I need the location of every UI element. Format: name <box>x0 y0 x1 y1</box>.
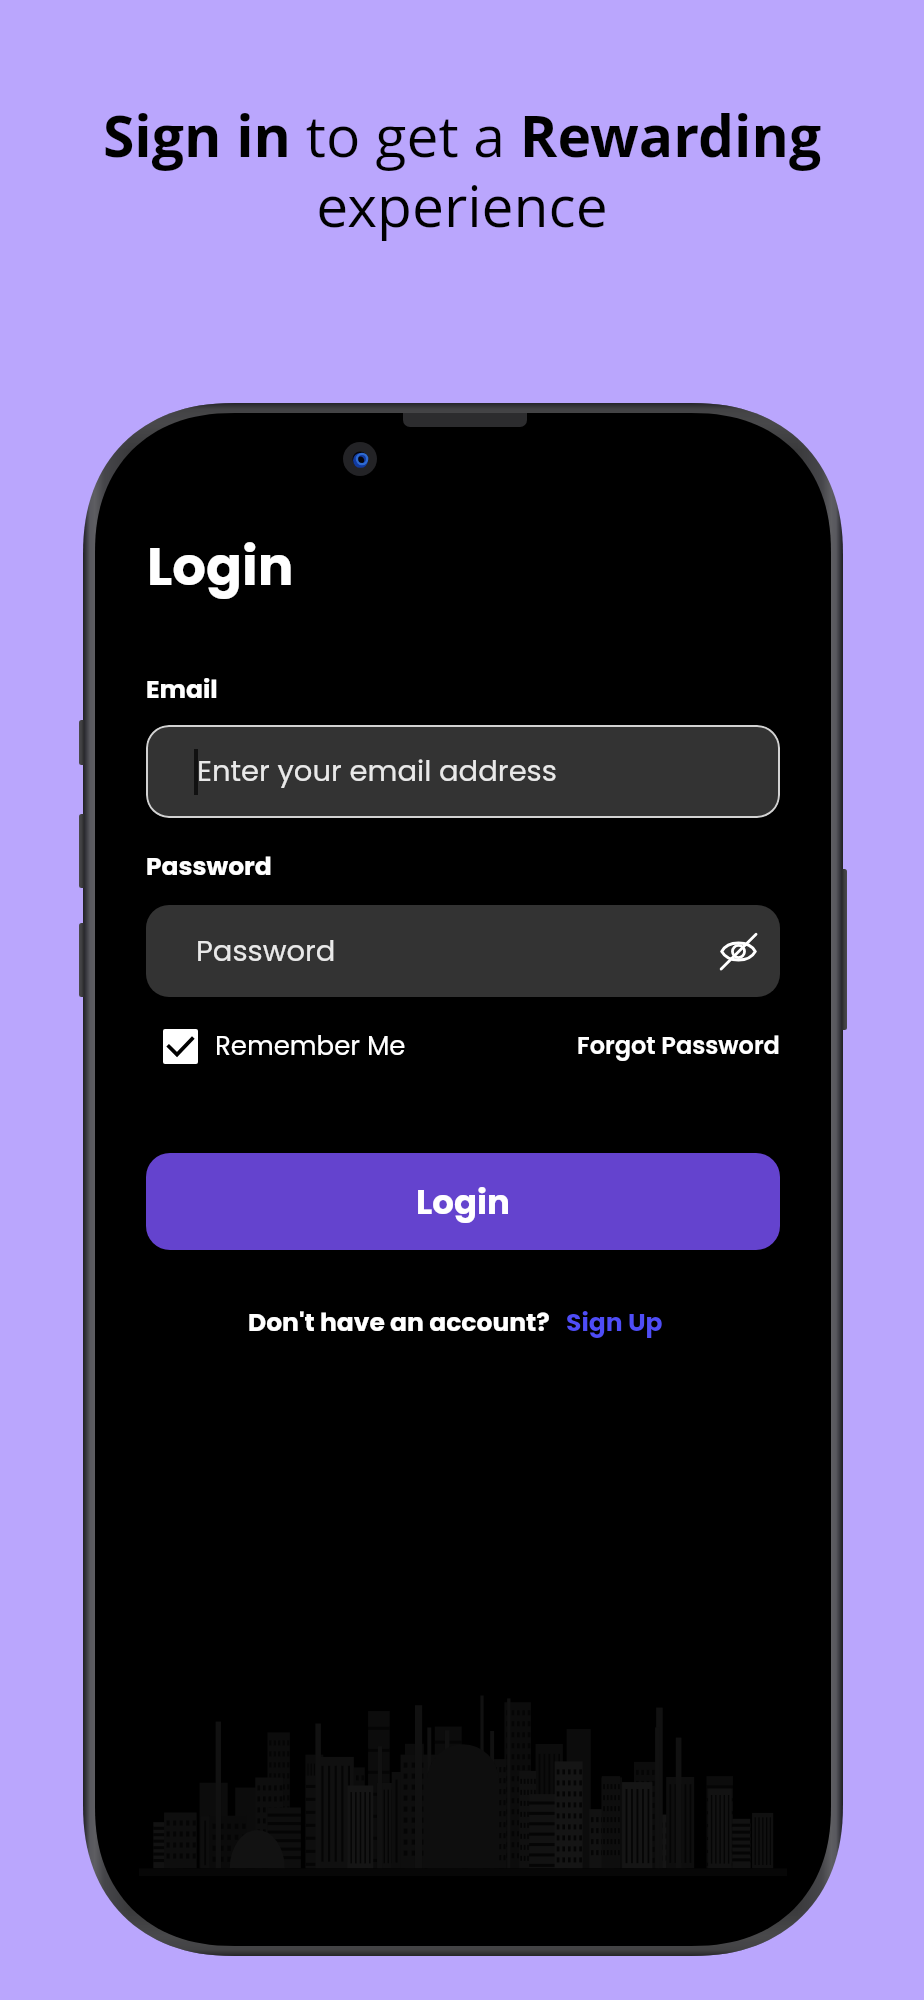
staticText: Email <box>146 672 218 707</box>
staticText: Enter your email address <box>197 751 557 792</box>
staticText: Sign Up <box>566 1305 663 1340</box>
button[interactable]: Enter your email address <box>146 725 780 818</box>
staticText: Forgot Password <box>577 1029 780 1063</box>
staticText: Don't have an account? <box>248 1305 550 1340</box>
staticText: Sign in to get a Rewarding experience <box>82 96 842 244</box>
staticText: Password <box>196 931 336 972</box>
staticText: Remember Me <box>215 1028 406 1064</box>
button[interactable]: Forgot Password <box>577 1029 780 1063</box>
staticText: Login <box>416 1178 510 1226</box>
staticText: Password <box>146 849 272 884</box>
button[interactable]: Remember Me <box>163 1028 406 1064</box>
staticText: Login <box>147 529 294 603</box>
button[interactable]: Login <box>146 1153 780 1250</box>
button[interactable]: Show password <box>714 927 762 975</box>
button[interactable]: Password <box>146 905 780 997</box>
button[interactable]: Sign Up <box>566 1305 663 1340</box>
